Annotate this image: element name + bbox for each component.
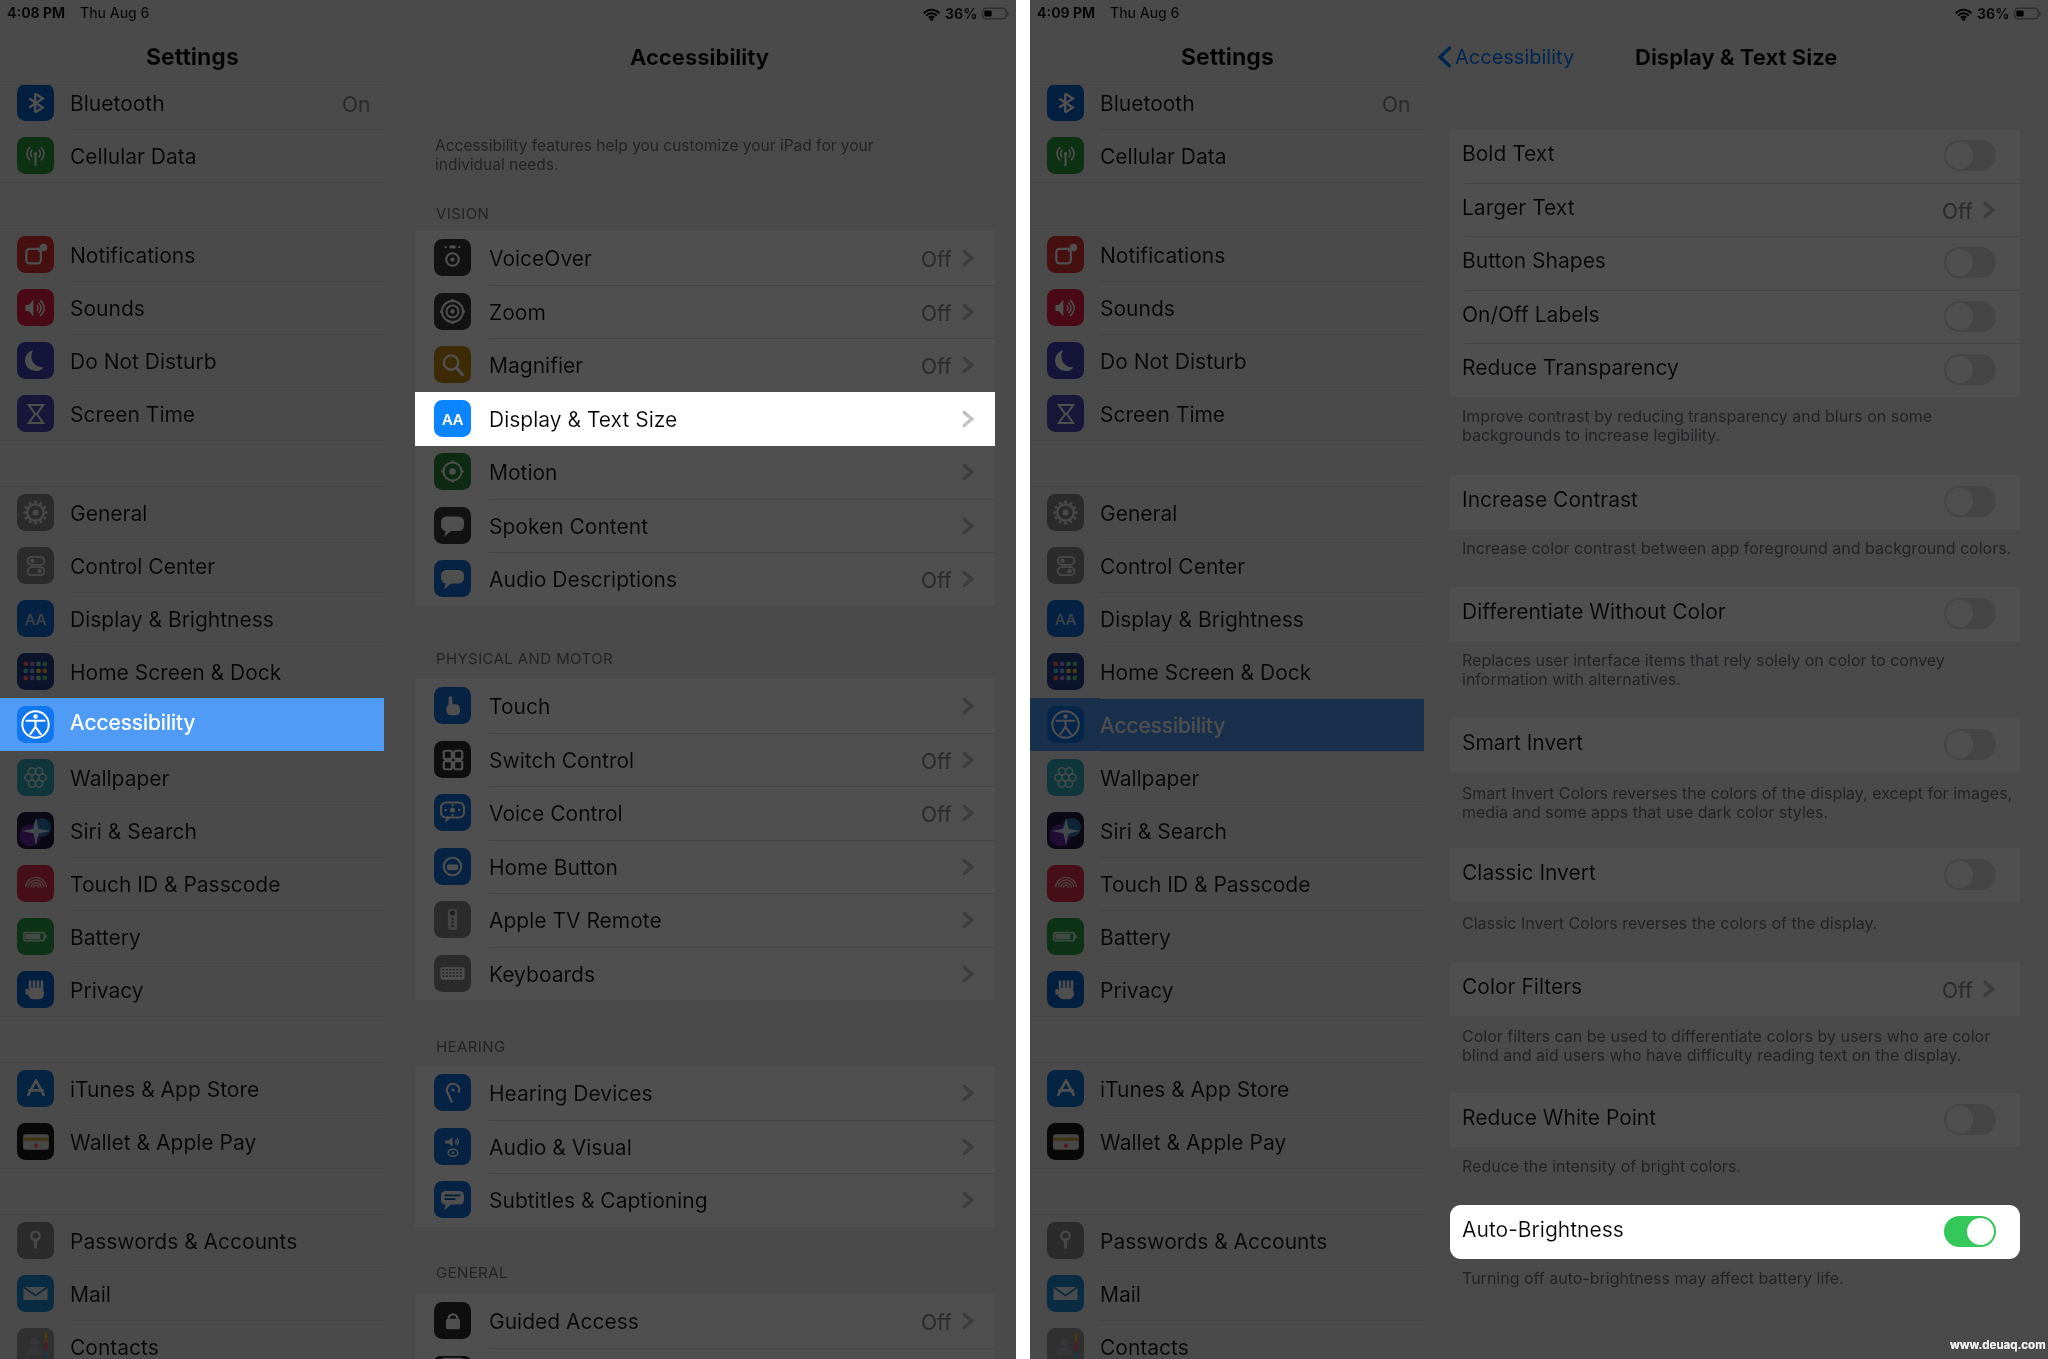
button[interactable]: Audio & Visual: [415, 1120, 995, 1174]
button[interactable]: Wallet & Apple Pay: [1030, 1115, 1424, 1168]
button[interactable]: Mail: [1030, 1267, 1424, 1320]
button[interactable]: Bluetooth: [1030, 84, 1424, 129]
button[interactable]: Guided Access: [415, 1294, 995, 1348]
staticText: Do Not Disturb: [70, 349, 217, 374]
button[interactable]: Do Not Disturb: [0, 334, 384, 387]
button[interactable]: Privacy: [0, 963, 384, 1016]
button[interactable]: Spoken Content: [415, 499, 995, 553]
staticText: 36%: [945, 5, 978, 22]
button[interactable]: AA: [415, 392, 995, 446]
button[interactable]: Reduce White Point: [1450, 1093, 2020, 1147]
button[interactable]: Touch ID & Passcode: [0, 857, 384, 910]
button[interactable]: Bold Text: [1450, 129, 2020, 183]
button[interactable]: iTunes & App Store: [0, 1062, 384, 1115]
button[interactable]: General: [1030, 486, 1424, 539]
button[interactable]: Battery: [1030, 910, 1424, 963]
staticText: iTunes & App Store: [70, 1077, 260, 1102]
button[interactable]: Siri & Search: [1030, 804, 1424, 857]
staticText: Voice Control: [489, 801, 623, 826]
button[interactable]: Home Button: [415, 840, 995, 894]
button[interactable]: Classic Invert: [1450, 848, 2020, 902]
button[interactable]: Increase Contrast: [1450, 475, 2020, 529]
button[interactable]: AA: [1030, 592, 1424, 645]
button[interactable]: Back to Accessibility: [1438, 44, 1575, 70]
button[interactable]: Control Center: [0, 539, 384, 592]
staticText: Battery: [70, 925, 141, 950]
button[interactable]: Motion: [415, 445, 995, 499]
staticText: Control Center: [70, 554, 216, 579]
button[interactable]: Touch ID & Passcode: [1030, 857, 1424, 910]
button[interactable]: Auto-Brightness: [1450, 1205, 2020, 1259]
button[interactable]: Battery: [0, 910, 384, 963]
button[interactable]: Sounds: [1030, 281, 1424, 334]
button[interactable]: Notifications: [1030, 228, 1424, 281]
staticText: Display & Text Size: [1635, 44, 1838, 71]
button[interactable]: Voice Control: [415, 786, 995, 840]
button[interactable]: iTunes & App Store: [1030, 1062, 1424, 1115]
button[interactable]: Touch: [415, 679, 995, 733]
button[interactable]: Accessibility: [0, 698, 384, 751]
button[interactable]: Siri: [415, 1348, 995, 1359]
staticText: Keyboards: [489, 962, 595, 987]
button[interactable]: Apple TV Remote: [415, 893, 995, 947]
button[interactable]: Cellular Data: [0, 129, 384, 182]
button[interactable]: Magnifier: [415, 338, 995, 392]
button[interactable]: AA: [415, 392, 995, 446]
button[interactable]: Mail: [0, 1267, 384, 1320]
staticText: Classic Invert: [1462, 860, 1596, 885]
button[interactable]: Switch Control: [415, 733, 995, 787]
staticText: 4:08 PM: [7, 4, 66, 21]
staticText: Off: [921, 802, 952, 827]
button[interactable]: Reduce Transparency: [1450, 343, 2020, 397]
button[interactable]: Notifications: [0, 228, 384, 281]
button[interactable]: Do Not Disturb: [1030, 334, 1424, 387]
button[interactable]: Sounds: [0, 281, 384, 334]
button[interactable]: Subtitles & Captioning: [415, 1173, 995, 1227]
button[interactable]: Home Screen & Dock: [1030, 645, 1424, 698]
button[interactable]: Siri & Search: [0, 804, 384, 857]
button[interactable]: Wallpaper: [1030, 751, 1424, 804]
staticText: Bluetooth: [1100, 91, 1195, 116]
staticText: On: [1382, 92, 1411, 117]
button[interactable]: Contacts: [1030, 1320, 1424, 1359]
staticText: Battery: [1100, 925, 1171, 950]
staticText: Contacts: [70, 1335, 159, 1359]
button[interactable]: Privacy: [1030, 963, 1424, 1016]
button[interactable]: Zoom: [415, 285, 995, 339]
button[interactable]: Accessibility: [1030, 698, 1424, 751]
button[interactable]: Smart Invert: [1450, 718, 2020, 772]
button[interactable]: Color Filters: [1450, 962, 2020, 1016]
button[interactable]: Audio Descriptions: [415, 552, 995, 606]
button[interactable]: Control Center: [1030, 539, 1424, 592]
button[interactable]: Differentiate Without Color: [1450, 587, 2020, 641]
staticText: Touch ID & Passcode: [1100, 872, 1311, 897]
staticText: Notifications: [70, 243, 196, 268]
button[interactable]: Screen Time: [0, 387, 384, 440]
button[interactable]: Wallet & Apple Pay: [0, 1115, 384, 1168]
button[interactable]: Keyboards: [415, 947, 995, 1001]
button[interactable]: Accessibility: [0, 698, 384, 751]
staticText: HEARING: [436, 1037, 506, 1055]
staticText: VISION: [436, 204, 490, 222]
button[interactable]: Hearing Devices: [415, 1066, 995, 1120]
button[interactable]: General: [0, 486, 384, 539]
staticText: Color filters can be used to differentia…: [1462, 1026, 1991, 1045]
staticText: Turning off auto-brightness may affect b…: [1462, 1268, 1844, 1287]
button[interactable]: Passwords & Accounts: [1030, 1214, 1424, 1267]
staticText: Off: [921, 749, 952, 774]
button[interactable]: Passwords & Accounts: [0, 1214, 384, 1267]
button[interactable]: Larger Text: [1450, 183, 2020, 237]
button[interactable]: VoiceOver: [415, 231, 995, 285]
button[interactable]: Button Shapes: [1450, 236, 2020, 290]
button[interactable]: Wallpaper: [0, 751, 384, 804]
button[interactable]: On/Off Labels: [1450, 290, 2020, 344]
button[interactable]: Bluetooth: [0, 84, 384, 129]
staticText: Home Screen & Dock: [70, 660, 282, 685]
button[interactable]: Home Screen & Dock: [0, 645, 384, 698]
staticText: Accessibility: [70, 710, 196, 735]
button[interactable]: AA: [0, 592, 384, 645]
button[interactable]: Cellular Data: [1030, 129, 1424, 182]
button[interactable]: Screen Time: [1030, 387, 1424, 440]
staticText: Off: [1942, 978, 1973, 1003]
button[interactable]: Contacts: [0, 1320, 384, 1359]
